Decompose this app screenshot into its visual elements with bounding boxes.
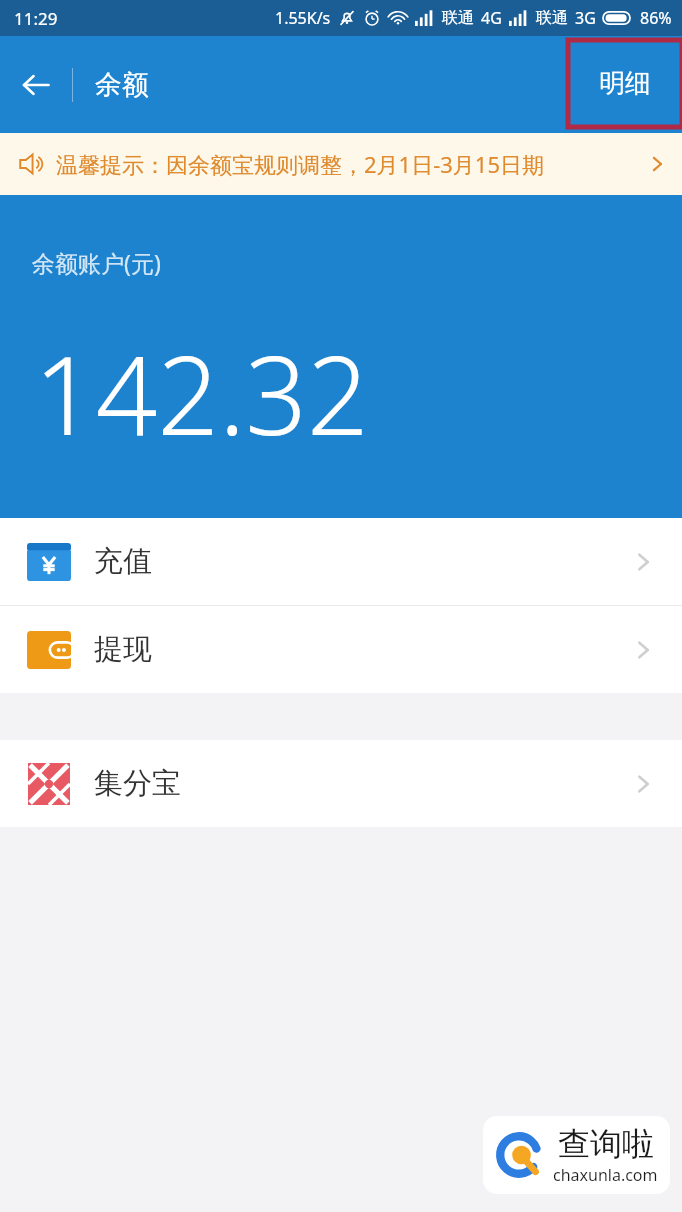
staticText: 联通: [442, 8, 474, 28]
staticText: 142.32: [34, 320, 369, 467]
staticText: 充值: [94, 543, 152, 580]
staticText: 明细: [599, 67, 651, 100]
staticText: 温馨提示：因余额宝规则调整，2月1日-3月15日期: [56, 149, 638, 179]
button[interactable]: 提现: [0, 606, 682, 693]
staticText: 查询啦: [558, 1124, 654, 1164]
staticText: 1.55K/s: [275, 7, 331, 29]
staticText: 提现: [94, 631, 152, 668]
staticText: 联通: [536, 8, 568, 28]
staticText: chaxunla.com: [553, 1164, 658, 1186]
button[interactable]: 温馨提示：因余额宝规则调整，2月1日-3月15日期: [0, 133, 682, 195]
staticText: 4G: [481, 7, 502, 29]
staticText: 3G: [575, 7, 596, 29]
button[interactable]: 明细: [568, 40, 682, 127]
button[interactable]: 集分宝: [0, 740, 682, 827]
button[interactable]: Back: [0, 36, 72, 133]
button[interactable]: 充值: [0, 518, 682, 605]
staticText: 11:29: [14, 7, 58, 30]
staticText: 86%: [640, 7, 672, 29]
staticText: 余额: [95, 68, 149, 102]
staticText: 集分宝: [94, 765, 181, 802]
staticText: 余额账户(元): [32, 247, 161, 278]
